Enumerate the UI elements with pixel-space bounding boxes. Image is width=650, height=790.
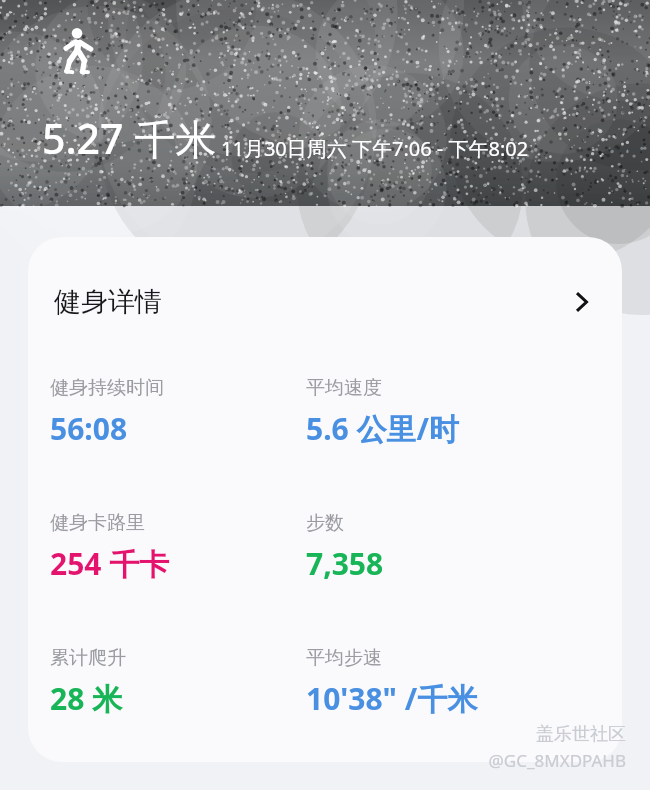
button[interactable]: 平均步速 [306,638,622,719]
button[interactable]: 平均速度 [306,368,622,449]
button[interactable]: 健身详情 [28,237,622,367]
staticText: 5.6 公里/时 [306,408,459,449]
button[interactable]: 健身卡路里 [50,503,306,584]
button[interactable]: 累计爬升 [50,638,306,719]
button[interactable]: 健身持续时间 [50,368,306,449]
staticText: 盖乐世社区 [536,723,626,746]
staticText: 健身持续时间 [50,376,164,400]
staticText: 平均步速 [306,646,382,670]
staticText: 步数 [306,511,344,535]
staticText: @GC_8MXDPAHB [488,749,626,772]
button[interactable]: 步数 [306,503,622,584]
staticText: 累计爬升 [50,646,126,670]
staticText: 平均速度 [306,376,382,400]
staticText: 健身卡路里 [50,511,145,535]
staticText: 健身详情 [54,285,162,319]
staticText: 10'38" /千米 [306,678,478,719]
other: Walking workout [54,28,100,74]
staticText: 56:08 [50,408,128,449]
staticText: 254 千卡 [50,543,170,584]
staticText: 7,358 [306,543,384,584]
staticText: 28 米 [50,678,123,719]
staticText: 11月30日周六 下午7:06 - 下午8:02 [221,135,529,162]
staticText: 5.27 千米 [42,110,217,166]
